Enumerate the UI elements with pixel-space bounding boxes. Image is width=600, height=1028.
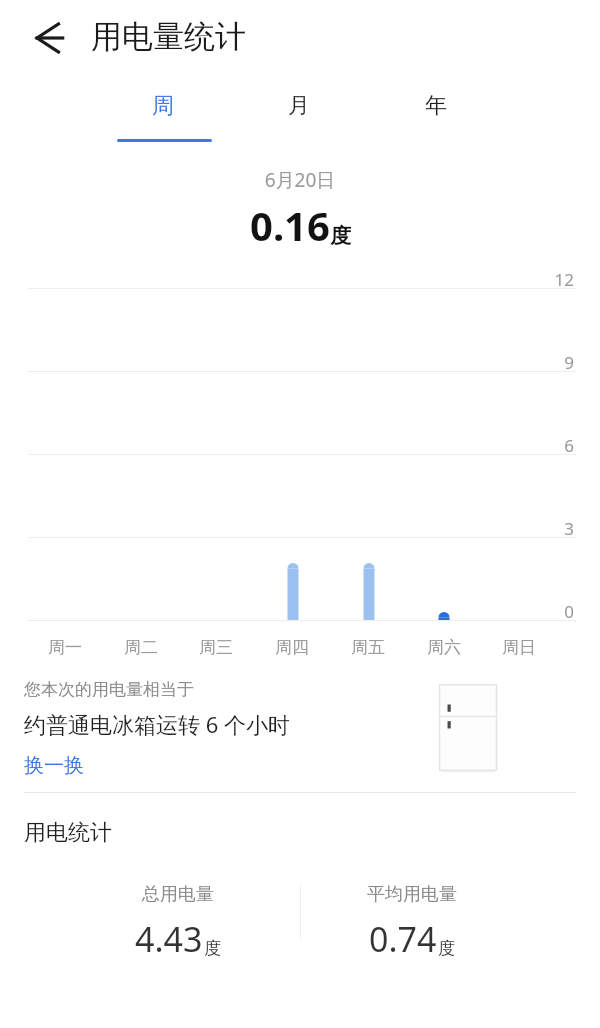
button[interactable]: 年 — [381, 92, 491, 136]
staticText: 12 — [500, 268, 574, 291]
staticText: 6 — [500, 434, 574, 457]
staticText: 0.74 — [369, 916, 437, 962]
staticText: 4.43 — [135, 916, 203, 962]
staticText: 月 — [288, 92, 310, 120]
staticText: 周日 — [489, 637, 549, 658]
staticText: 您本次的用电量相当于 — [24, 679, 194, 700]
staticText: 度 — [330, 223, 351, 249]
staticText: 0 — [500, 600, 574, 623]
staticText: 用电统计 — [24, 819, 112, 847]
staticText: 年 — [425, 92, 447, 120]
staticText: 0.16 — [250, 198, 330, 252]
staticText: 周五 — [338, 637, 398, 658]
button[interactable]: 换一换 — [24, 753, 84, 778]
staticText: 9 — [500, 351, 574, 374]
staticText: 周四 — [262, 637, 322, 658]
staticText: 度 — [438, 938, 455, 959]
staticText: 6月20日 — [0, 167, 600, 193]
button[interactable]: Back — [24, 14, 72, 62]
staticText: 用电量统计 — [91, 17, 246, 56]
staticText: 周 — [152, 92, 174, 120]
staticText: 约普通电冰箱运转 6 个小时 — [24, 709, 291, 739]
staticText: 周六 — [414, 637, 474, 658]
button[interactable]: 周 — [108, 92, 218, 136]
staticText: 周二 — [111, 637, 171, 658]
staticText: 周三 — [186, 637, 246, 658]
staticText: 度 — [204, 938, 221, 959]
staticText: 3 — [500, 517, 574, 540]
staticText: 周一 — [35, 637, 95, 658]
staticText: 平均用电量 — [367, 883, 457, 906]
staticText: 换一换 — [24, 753, 84, 778]
staticText: 总用电量 — [142, 883, 214, 906]
button[interactable]: 月 — [244, 92, 354, 136]
